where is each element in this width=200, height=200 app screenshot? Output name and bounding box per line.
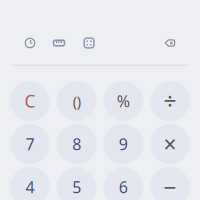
staticText: 9 <box>119 133 128 155</box>
button[interactable]: 9 <box>103 124 143 164</box>
staticText: 7 <box>25 133 34 155</box>
button[interactable]: Delete <box>157 30 183 56</box>
staticText: 4 <box>25 176 34 198</box>
button[interactable]: ÷ <box>150 81 190 121</box>
staticText: 6 <box>119 176 128 198</box>
staticText: () <box>73 91 81 111</box>
staticText: C <box>24 89 35 112</box>
button[interactable]: C <box>10 81 50 121</box>
button[interactable]: × <box>150 124 190 164</box>
button[interactable]: − <box>150 167 190 200</box>
button[interactable]: Calculator <box>76 30 102 56</box>
button[interactable]: 7 <box>10 124 50 164</box>
button[interactable]: % <box>103 81 143 121</box>
staticText: % <box>117 90 130 112</box>
staticText: ÷ <box>163 86 176 116</box>
staticText: − <box>163 172 176 200</box>
button[interactable]: 5 <box>57 167 97 200</box>
button[interactable]: 6 <box>103 167 143 200</box>
staticText: 5 <box>72 176 81 198</box>
button[interactable]: History <box>17 30 43 56</box>
button[interactable]: 8 <box>57 124 97 164</box>
button[interactable]: 4 <box>10 167 50 200</box>
staticText: 8 <box>72 133 81 155</box>
button[interactable]: Unit converter <box>46 30 72 56</box>
staticText: × <box>163 129 176 159</box>
button[interactable]: () <box>57 81 97 121</box>
